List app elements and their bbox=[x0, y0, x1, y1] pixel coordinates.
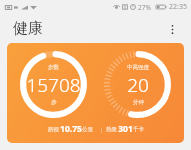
button[interactable]: 中高强度 bbox=[102, 49, 173, 120]
staticText: | bbox=[93, 126, 105, 133]
staticText: 分钟 bbox=[133, 99, 144, 106]
staticText: 22:35 bbox=[169, 2, 187, 12]
staticText: 千卡 bbox=[133, 126, 144, 133]
staticText: 路程 bbox=[47, 125, 60, 133]
staticText: 健康 bbox=[13, 19, 43, 38]
staticText: 15708 bbox=[26, 72, 81, 98]
button[interactable]: More options bbox=[161, 18, 183, 40]
staticText: 27% bbox=[138, 3, 151, 12]
staticText: 步 bbox=[51, 99, 57, 106]
staticText: 中高强度 bbox=[127, 64, 149, 71]
staticText: 公里 bbox=[82, 126, 93, 133]
button[interactable]: 步数 bbox=[18, 49, 89, 120]
staticText: 10.75 bbox=[60, 123, 82, 135]
button[interactable]: 步数 bbox=[7, 43, 184, 143]
staticText: 20 bbox=[127, 72, 149, 98]
staticText: 301 bbox=[118, 123, 133, 135]
staticText: 热量 bbox=[105, 125, 118, 133]
staticText: 步数 bbox=[48, 64, 59, 71]
